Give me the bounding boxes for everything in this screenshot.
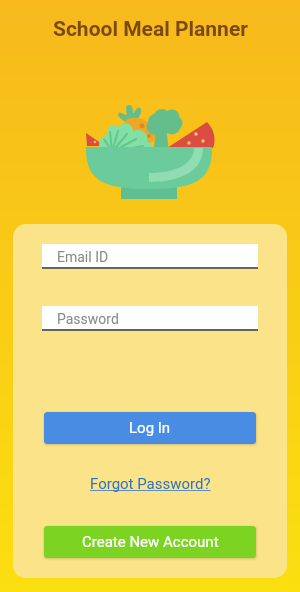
button[interactable]: Log In bbox=[44, 412, 256, 444]
staticText: Create New Account bbox=[82, 533, 219, 551]
button[interactable]: Forgot Password? bbox=[44, 472, 256, 496]
staticText: Email ID bbox=[57, 249, 109, 265]
staticText: Log In bbox=[129, 419, 171, 437]
button[interactable]: Create New Account bbox=[44, 526, 256, 558]
button[interactable]: Password bbox=[42, 306, 258, 331]
staticText: Forgot Password? bbox=[90, 475, 211, 493]
staticText: School Meal Planner bbox=[53, 17, 248, 42]
staticText: Password bbox=[57, 311, 119, 327]
button[interactable]: Email ID bbox=[42, 244, 258, 269]
